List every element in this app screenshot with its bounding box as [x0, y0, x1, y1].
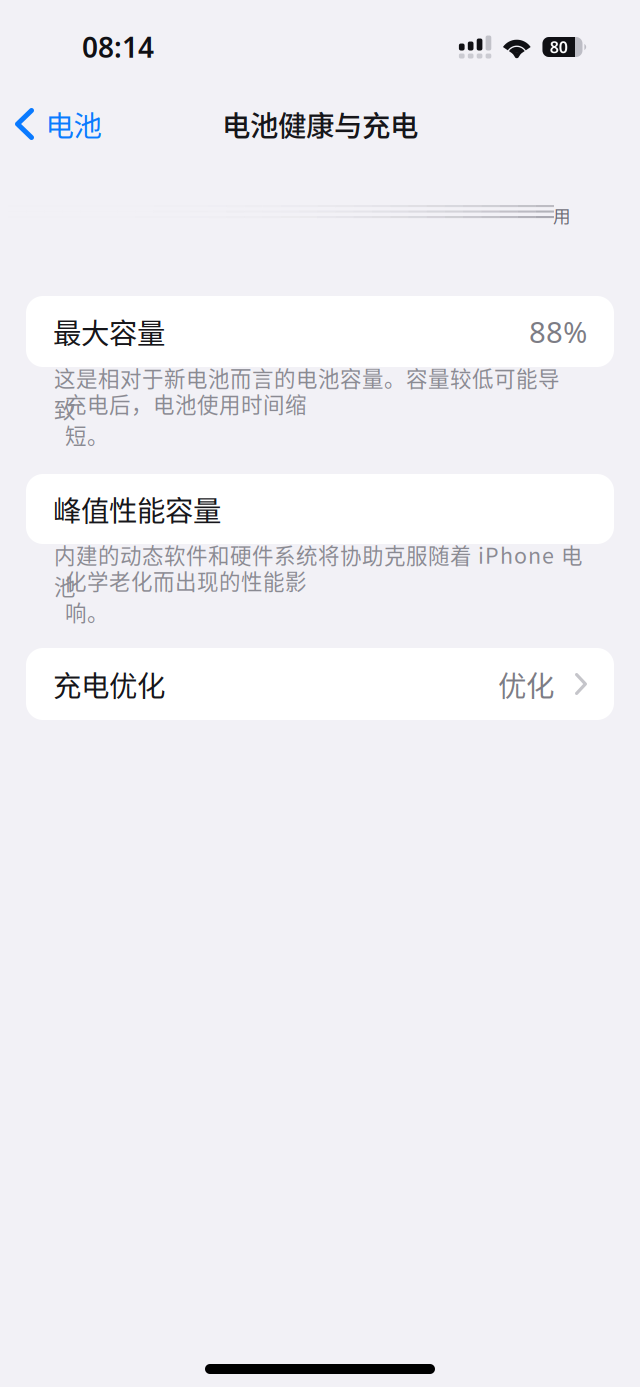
staticText: 峰值性能容量	[53, 488, 221, 529]
button[interactable]: 充电优化	[0, 648, 640, 720]
staticText: 08:14	[82, 28, 154, 66]
staticText: 电池健康与充电	[222, 103, 418, 144]
staticText: 优化	[498, 663, 554, 704]
button[interactable]: 峰值性能容量	[0, 474, 640, 544]
staticText: 这是相对于新电池而言的电池容量。容量较低可能导致	[54, 362, 559, 424]
staticText: 最大容量	[53, 311, 165, 352]
staticText: 内建的动态软件和硬件系统将协助克服随着 iPhone 电池	[54, 539, 582, 601]
button[interactable]: 最大容量	[0, 296, 640, 367]
staticText: 充电后，电池使用时间缩短。	[65, 388, 306, 450]
staticText: 用	[553, 202, 571, 227]
staticText: 88%	[529, 312, 587, 351]
staticText: 化学老化而出现的性能影响。	[65, 565, 306, 627]
staticText: 电池	[45, 103, 101, 144]
staticText: 80	[550, 36, 568, 58]
staticText: 充电优化	[53, 663, 165, 704]
button[interactable]: 电池	[0, 93, 121, 154]
